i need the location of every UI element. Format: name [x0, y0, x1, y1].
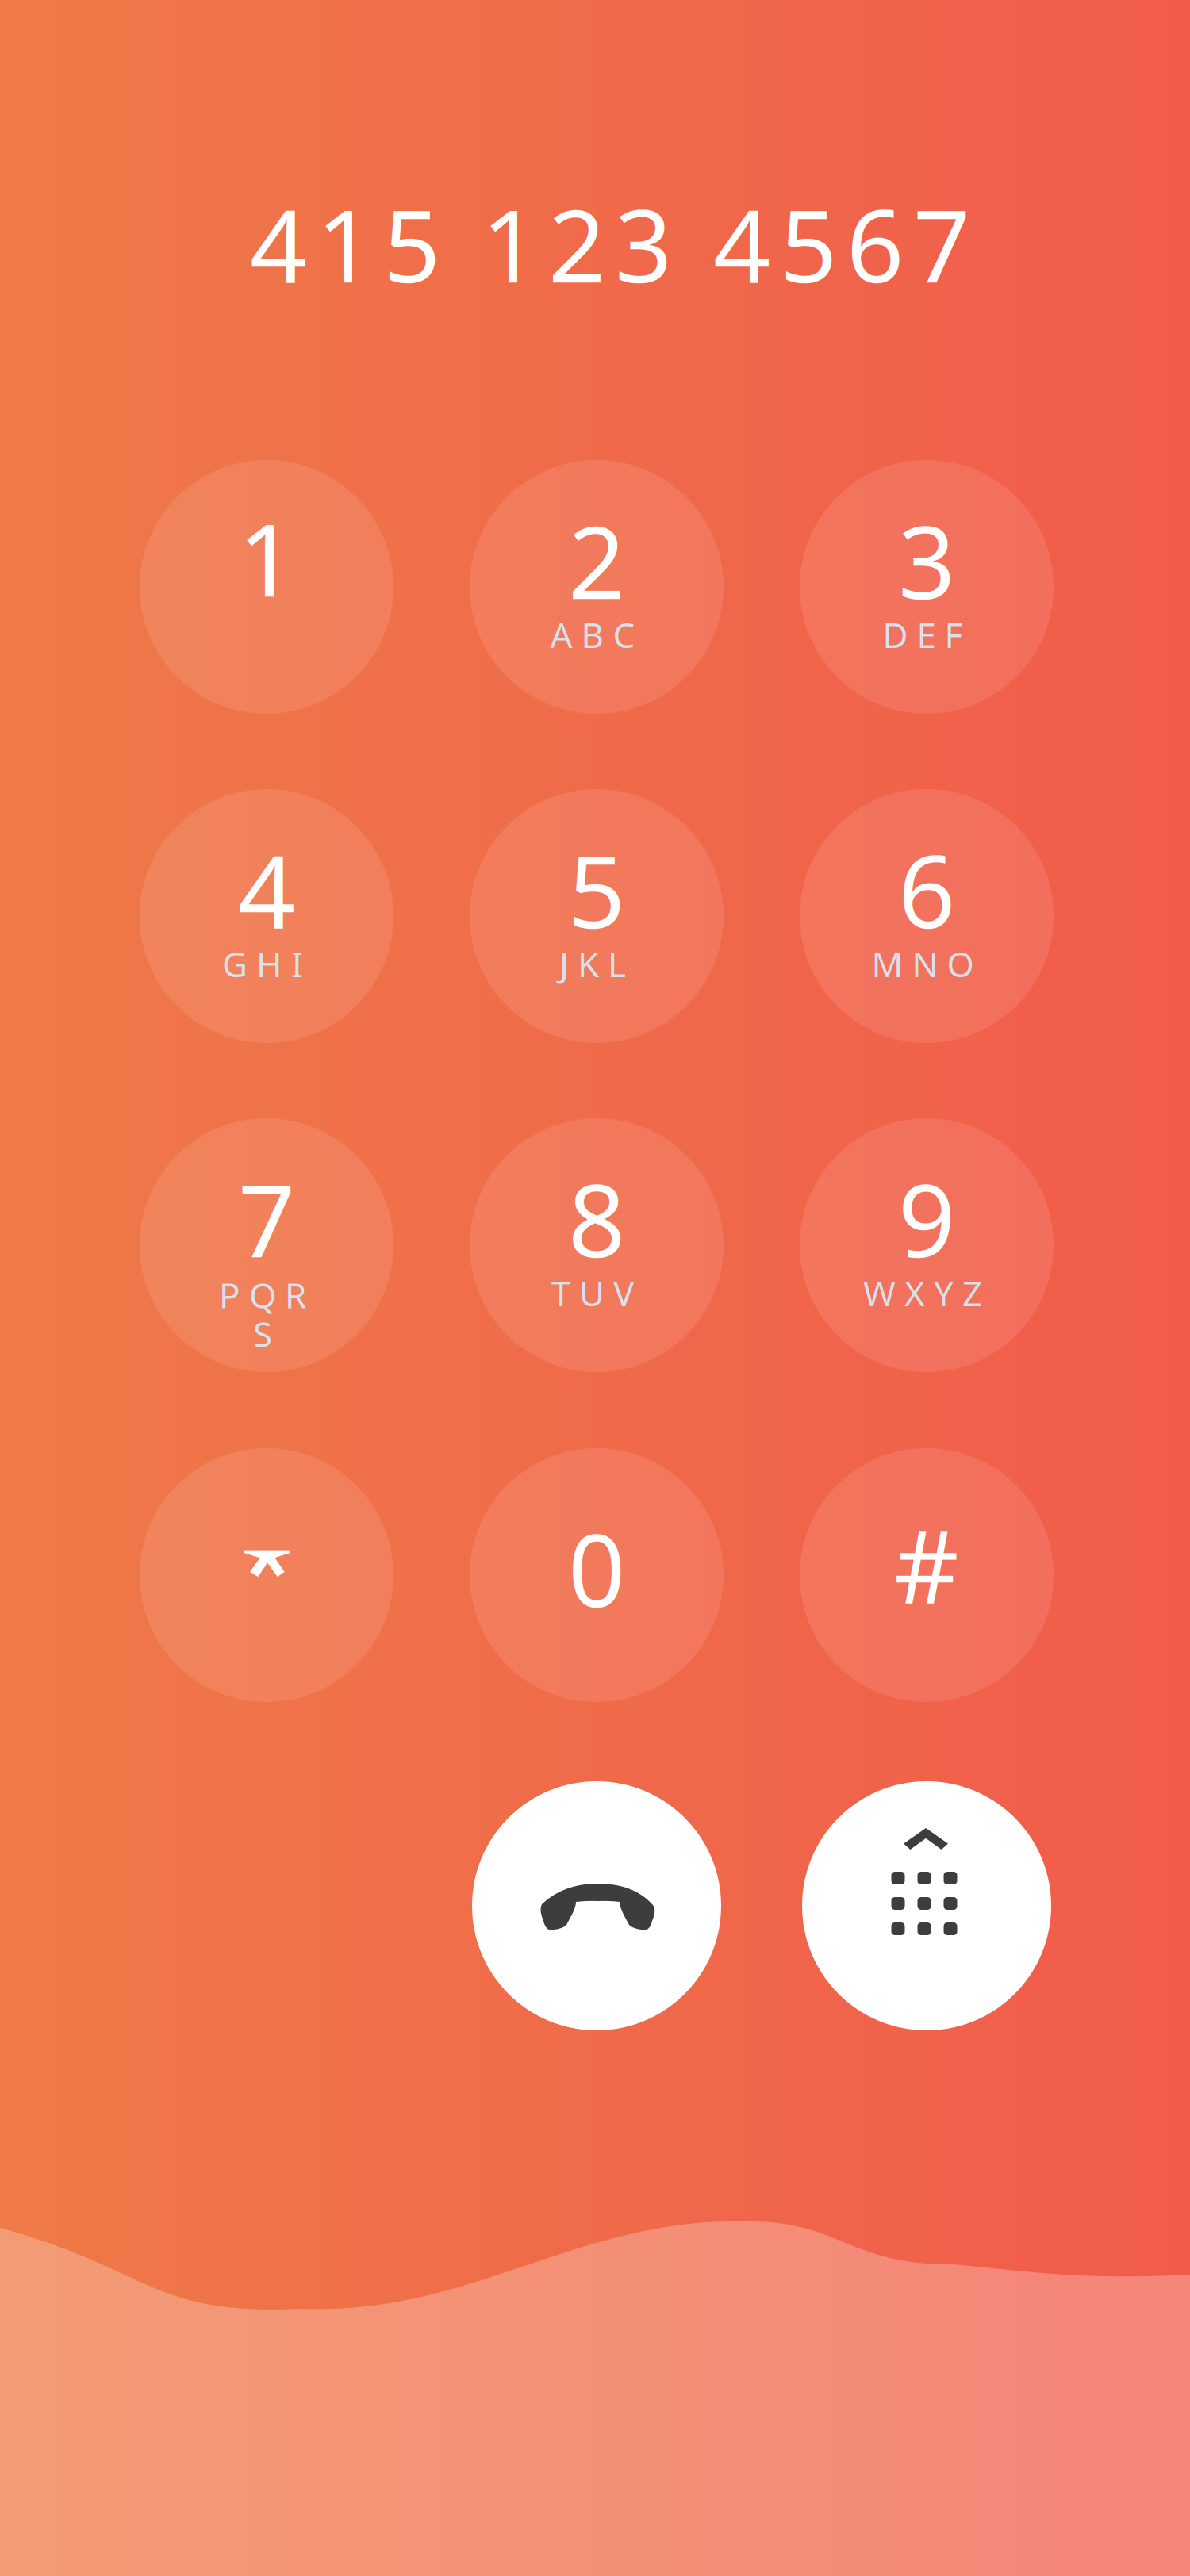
button[interactable]: End call	[472, 1781, 721, 2030]
staticText: 8	[568, 1152, 625, 1285]
button[interactable]: 4	[140, 789, 393, 1043]
button[interactable]: 7	[140, 1118, 393, 1372]
button[interactable]: #	[800, 1448, 1054, 1702]
staticText: 0	[568, 1501, 625, 1635]
button[interactable]: 8	[470, 1118, 724, 1372]
staticText: 3	[898, 493, 955, 627]
button[interactable]: Hide keypad	[802, 1781, 1051, 2030]
button[interactable]: 0	[470, 1448, 724, 1702]
staticText: 7	[238, 1152, 295, 1285]
button[interactable]: 6	[800, 789, 1054, 1043]
staticText: 123	[482, 177, 672, 310]
staticText: 4	[238, 822, 295, 956]
staticText: GHI	[222, 940, 303, 987]
button[interactable]	[140, 1448, 393, 1702]
button[interactable]: 5	[470, 789, 724, 1043]
button[interactable]: 2	[470, 460, 724, 714]
staticText: 415	[250, 177, 440, 310]
staticText: 4567	[713, 177, 970, 310]
staticText: MNO	[871, 940, 974, 987]
staticText: JKL	[559, 940, 626, 987]
button[interactable]: 1	[140, 460, 393, 714]
staticText: DEF	[883, 611, 963, 658]
staticText: S	[253, 1310, 272, 1357]
staticText: ABC	[550, 611, 635, 658]
staticText: #	[894, 1497, 959, 1631]
staticText: TUV	[551, 1270, 634, 1316]
staticText: 2	[568, 493, 625, 627]
staticText: PQR	[219, 1272, 306, 1318]
button[interactable]: 3	[800, 460, 1054, 714]
staticText: 9	[898, 1152, 955, 1285]
button[interactable]: 9	[800, 1118, 1054, 1372]
staticText: 6	[898, 822, 955, 956]
staticText: WXYZ	[863, 1270, 982, 1316]
staticText: 5	[568, 822, 625, 956]
staticText: 1	[238, 491, 295, 624]
